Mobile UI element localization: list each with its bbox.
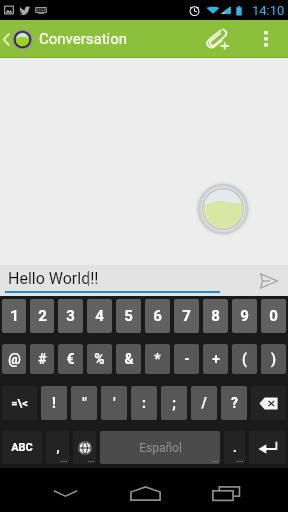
staticText: #: [38, 351, 47, 367]
staticText: /: [201, 395, 207, 411]
staticText: +: [212, 351, 220, 367]
button[interactable]: 8: [203, 299, 228, 333]
staticText: ?: [231, 395, 238, 411]
button[interactable]: +: [203, 344, 228, 374]
staticText: *: [154, 351, 161, 367]
other: Change keyboard language: [78, 441, 92, 455]
staticText: @: [8, 351, 21, 367]
staticText: !: [52, 395, 56, 411]
button[interactable]: 9: [232, 299, 257, 333]
staticText: ': [113, 395, 116, 411]
staticText: 0: [269, 307, 278, 325]
staticText: Hello World!!: [8, 269, 99, 288]
staticText: Español: [139, 441, 182, 455]
button[interactable]: !: [41, 386, 67, 420]
staticText: 14:10: [252, 3, 285, 18]
button[interactable]: :: [131, 386, 157, 420]
button[interactable]: 5: [116, 299, 141, 333]
button[interactable]: 1: [2, 299, 26, 333]
button[interactable]: 7: [174, 299, 199, 333]
staticText: &: [124, 351, 134, 367]
button[interactable]: ': [101, 386, 127, 420]
button[interactable]: -: [174, 344, 199, 374]
button[interactable]: 6: [145, 299, 170, 333]
staticText: 8: [211, 307, 220, 325]
button[interactable]: €: [58, 344, 83, 374]
button[interactable]: Send: [256, 268, 282, 294]
button[interactable]: 4: [87, 299, 112, 333]
button[interactable]: 3: [58, 299, 83, 333]
staticText: ): [271, 351, 276, 367]
staticText: %: [94, 351, 105, 367]
button[interactable]: Español: [100, 431, 220, 464]
button[interactable]: More options: [245, 20, 286, 58]
button[interactable]: =\<: [2, 386, 37, 420]
button[interactable]: ": [71, 386, 97, 420]
button[interactable]: Backspace: [251, 386, 286, 420]
staticText: 7: [182, 307, 191, 325]
other: Backspace: [259, 397, 278, 410]
staticText: ,: [56, 440, 60, 455]
button[interactable]: Back: [0, 20, 288, 58]
button[interactable]: %: [87, 344, 112, 374]
staticText: 6: [153, 307, 162, 325]
staticText: 2: [38, 307, 47, 325]
button[interactable]: *: [145, 344, 170, 374]
button[interactable]: 2: [30, 299, 54, 333]
staticText: 5: [124, 307, 133, 325]
button[interactable]: ?: [221, 386, 247, 420]
button[interactable]: #: [30, 344, 54, 374]
staticText: 9: [240, 307, 249, 325]
button[interactable]: .: [224, 431, 245, 464]
staticText: Conversation: [39, 30, 128, 48]
button[interactable]: Hide keyboard: [41, 477, 89, 509]
staticText: .: [233, 440, 237, 455]
staticText: 1: [10, 307, 19, 325]
staticText: =\<: [11, 397, 28, 410]
other: Enter: [258, 440, 278, 455]
button[interactable]: ,: [46, 431, 69, 464]
button[interactable]: Attach file: [194, 20, 242, 58]
staticText: ;: [172, 395, 176, 411]
staticText: -: [184, 351, 190, 367]
button[interactable]: 0: [261, 299, 286, 333]
staticText: ": [82, 395, 87, 411]
staticText: 4: [95, 307, 104, 325]
button[interactable]: ): [261, 344, 286, 374]
button[interactable]: (: [232, 344, 257, 374]
button[interactable]: /: [191, 386, 217, 420]
button[interactable]: &: [116, 344, 141, 374]
staticText: (: [242, 351, 247, 367]
button[interactable]: Home: [121, 477, 169, 509]
staticText: €: [66, 351, 75, 367]
button[interactable]: ;: [161, 386, 187, 420]
button[interactable]: Change keyboard language: [73, 431, 96, 464]
staticText: ABC: [11, 441, 33, 454]
button[interactable]: @: [2, 344, 26, 374]
button[interactable]: ABC: [2, 431, 42, 464]
staticText: :: [142, 395, 146, 411]
button[interactable]: Recent apps: [202, 477, 250, 509]
button[interactable]: Enter: [249, 431, 286, 464]
staticText: 3: [66, 307, 75, 325]
